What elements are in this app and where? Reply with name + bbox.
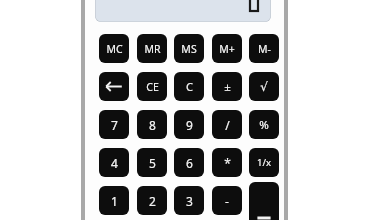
button[interactable]: 2 [137, 186, 167, 215]
staticText: M+ [219, 42, 235, 56]
button[interactable]: * [212, 148, 242, 177]
button[interactable]: 3 [174, 186, 204, 215]
staticText: 1 [111, 193, 118, 209]
staticText: MS [181, 42, 197, 56]
staticText: * [224, 155, 231, 171]
button[interactable]: M- [249, 34, 279, 63]
button[interactable]: C [174, 72, 204, 101]
button[interactable]: - [212, 186, 242, 215]
button[interactable]: Backspace [99, 72, 129, 101]
staticText: 4 [111, 155, 118, 171]
button[interactable]: CE [137, 72, 167, 101]
staticText: % [259, 117, 269, 133]
staticText: 2 [149, 193, 156, 209]
button[interactable]: 5 [137, 148, 167, 177]
staticText: - [225, 193, 229, 209]
button[interactable]: √ [249, 72, 279, 101]
button[interactable]: 9 [174, 110, 204, 139]
button[interactable]: 6 [174, 148, 204, 177]
staticText: 7 [111, 117, 118, 133]
button[interactable]: MS [174, 34, 204, 63]
staticText: MC [106, 42, 123, 56]
button[interactable]: Equals [249, 182, 279, 220]
staticText: 3 [186, 193, 193, 209]
button[interactable]: 8 [137, 110, 167, 139]
button[interactable]: MR [137, 34, 167, 63]
button[interactable]: MC [99, 34, 129, 63]
button[interactable]: % [249, 110, 279, 139]
button[interactable]: M+ [212, 34, 242, 63]
button[interactable]: 7 [99, 110, 129, 139]
button[interactable]: ± [212, 72, 242, 101]
button[interactable]: / [212, 110, 242, 139]
staticText: CE [146, 80, 159, 94]
staticText: M- [258, 42, 271, 56]
staticText: MR [144, 42, 161, 56]
staticText: C [186, 79, 193, 94]
button[interactable]: 1 [99, 186, 129, 215]
staticText: 1/x [257, 156, 271, 169]
button[interactable]: 1/x [249, 148, 279, 177]
staticText: ± [224, 79, 231, 95]
staticText: 5 [149, 155, 156, 171]
staticText: 8 [149, 117, 156, 133]
button[interactable]: 4 [99, 148, 129, 177]
staticText: / [225, 117, 230, 133]
staticText: 9 [186, 117, 193, 133]
staticText: √ [260, 80, 268, 94]
staticText: 6 [186, 155, 193, 171]
